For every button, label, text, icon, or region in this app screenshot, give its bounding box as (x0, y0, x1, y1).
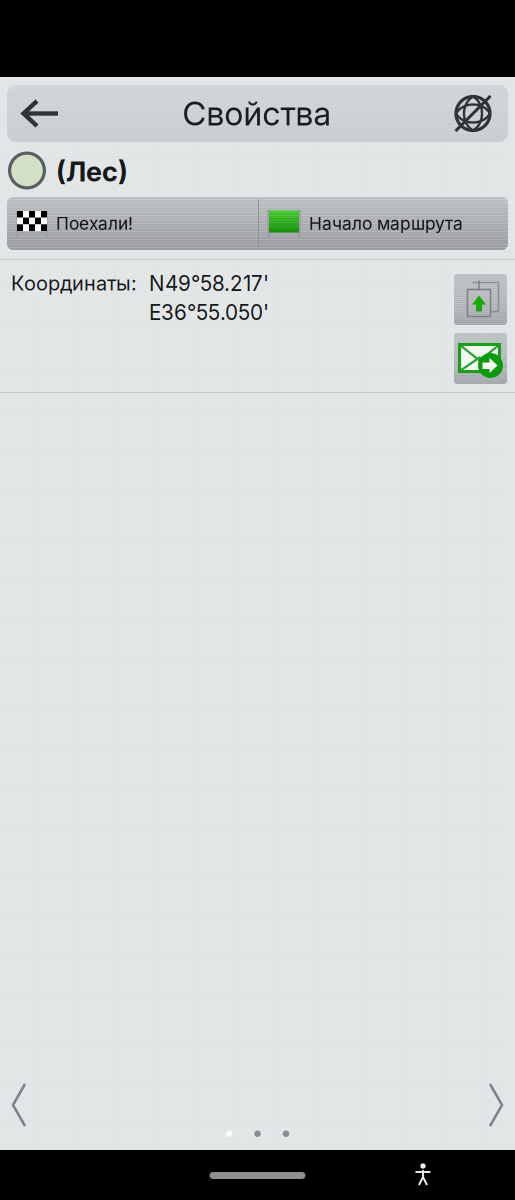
button[interactable]: Свойства (0, 85, 515, 142)
button[interactable]: Previous page (0, 1074, 44, 1136)
staticText: Поехали! (56, 213, 133, 234)
button[interactable]: Next page (471, 1074, 515, 1136)
staticText: Координаты: (11, 271, 137, 295)
button[interactable]: Поехали! (7, 197, 258, 250)
staticText: Начало маршрута (309, 213, 463, 234)
staticText: N49°58.217' (149, 271, 269, 296)
staticText: Свойства (182, 94, 330, 133)
button[interactable]: Начало маршрута (259, 197, 508, 250)
staticText: E36°55.050' (149, 300, 269, 325)
staticText: (Лес) (56, 155, 128, 188)
button[interactable]: Copy coordinates (454, 274, 507, 325)
button[interactable]: Send coordinates (454, 333, 507, 384)
